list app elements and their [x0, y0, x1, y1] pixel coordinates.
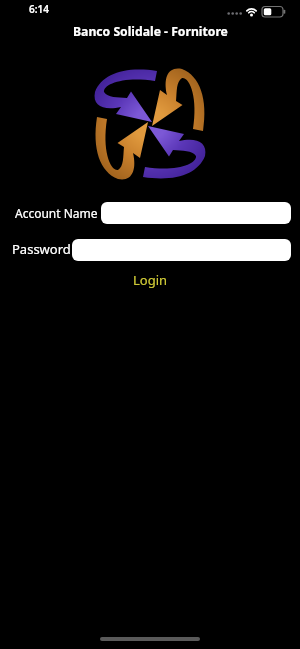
- staticText: 6:14: [29, 2, 49, 16]
- staticText: Password: [12, 240, 71, 258]
- button[interactable]: [72, 239, 291, 261]
- staticText: Account Name: [15, 205, 98, 221]
- button[interactable]: [101, 202, 291, 224]
- button[interactable]: Login: [133, 271, 168, 289]
- staticText: Login: [133, 271, 168, 289]
- staticText: Banco Solidale - Fornitore: [73, 23, 228, 40]
